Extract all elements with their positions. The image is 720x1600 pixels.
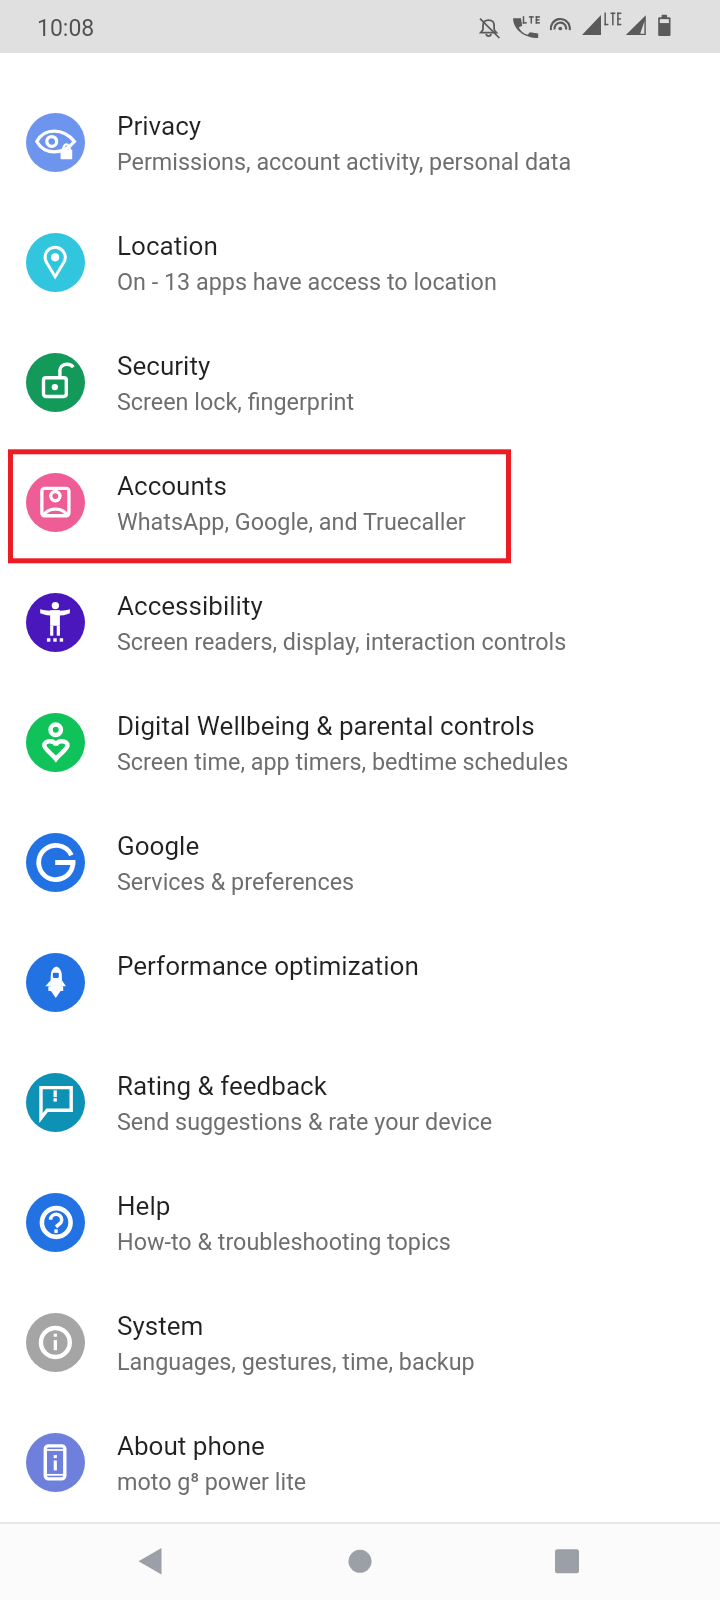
staticText: Screen lock, fingerprint [117, 388, 355, 415]
staticText: Accessibility [117, 591, 263, 622]
button[interactable]: System [0, 1282, 720, 1402]
button[interactable]: Rating & feedback [0, 1042, 720, 1162]
staticText: Privacy [117, 111, 202, 142]
staticText: Help [117, 1191, 171, 1222]
button[interactable]: Accessibility [0, 562, 720, 682]
staticText: WhatsApp, Google, and Truecaller [117, 508, 466, 535]
button[interactable]: Google [0, 802, 720, 922]
button[interactable]: Location [0, 202, 720, 322]
button[interactable]: Recent apps [528, 1522, 606, 1600]
staticText: Services & preferences [117, 868, 355, 895]
staticText: Screen time, app timers, bedtime schedul… [117, 748, 569, 775]
button[interactable]: Digital Wellbeing & parental controls [0, 682, 720, 802]
button[interactable]: About phone [0, 1402, 720, 1522]
staticText: Permissions, account activity, personal … [117, 148, 572, 175]
staticText: 10:08 [37, 15, 95, 42]
staticText: Languages, gestures, time, backup [117, 1348, 475, 1375]
button[interactable]: Security [0, 322, 720, 442]
staticText: About phone [117, 1431, 265, 1462]
button[interactable]: Back [111, 1522, 189, 1600]
staticText: Rating & feedback [117, 1071, 327, 1102]
button[interactable]: Accounts [0, 442, 720, 562]
staticText: Security [117, 351, 211, 382]
staticText: Digital Wellbeing & parental controls [117, 711, 535, 742]
staticText: Screen readers, display, interaction con… [117, 628, 567, 655]
staticText: System [117, 1311, 204, 1342]
staticText: Performance optimization [117, 951, 419, 982]
staticText: How-to & troubleshooting topics [117, 1228, 451, 1255]
staticText: On - 13 apps have access to location [117, 268, 497, 295]
staticText: Send suggestions & rate your device [117, 1108, 493, 1135]
button[interactable]: Performance optimization [0, 922, 720, 1042]
button[interactable]: Help [0, 1162, 720, 1282]
staticText: Google [117, 831, 200, 862]
button[interactable]: Home [321, 1522, 399, 1600]
staticText: Accounts [117, 471, 227, 502]
staticText: Location [117, 231, 218, 262]
button[interactable]: Privacy [0, 82, 720, 202]
staticText: moto g⁸ power lite [117, 1468, 307, 1495]
